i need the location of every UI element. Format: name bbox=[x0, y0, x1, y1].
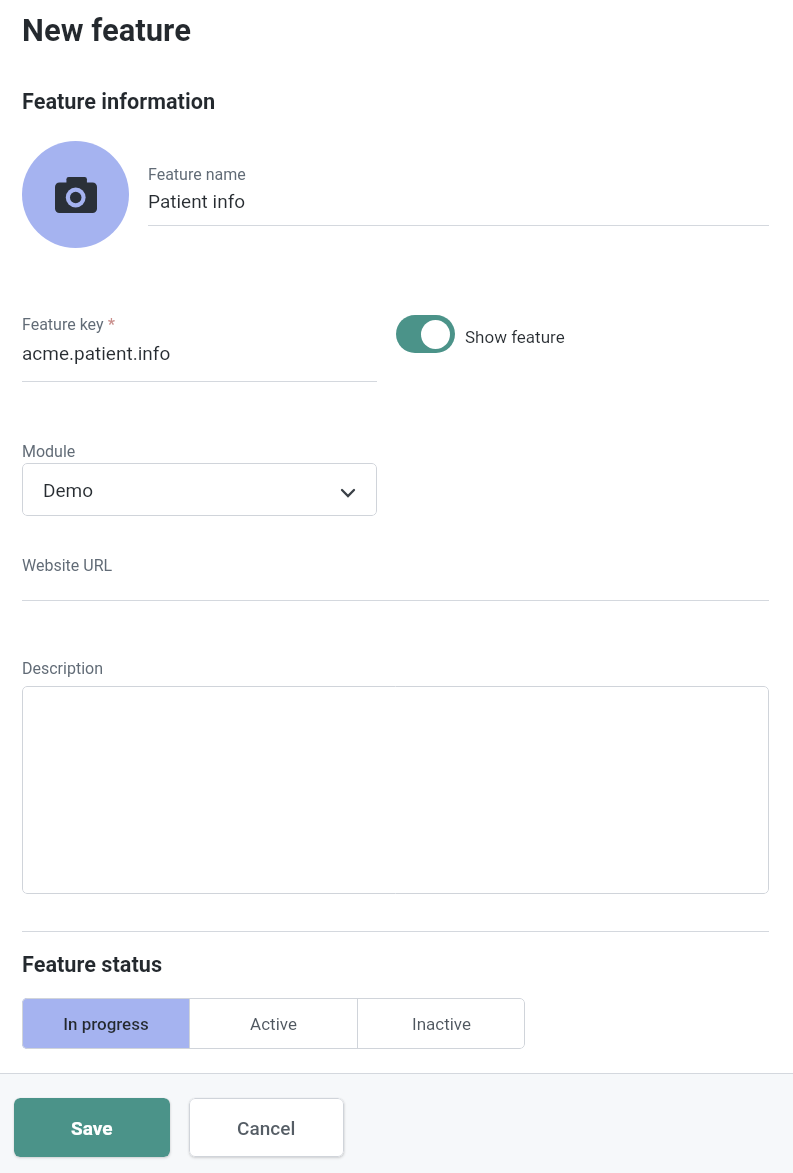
button[interactable]: Description input bbox=[22, 686, 769, 894]
staticText: Feature status bbox=[22, 952, 163, 977]
staticText: Demo bbox=[43, 479, 94, 501]
button[interactable]: Save bbox=[14, 1098, 170, 1157]
button[interactable]: Show feature bbox=[396, 315, 565, 353]
staticText: Patient info bbox=[148, 190, 246, 212]
other: Open module list bbox=[342, 490, 354, 496]
staticText: Feature information bbox=[22, 89, 216, 114]
staticText: Inactive bbox=[412, 1014, 471, 1034]
staticText: Website URL bbox=[22, 556, 113, 575]
staticText: Cancel bbox=[237, 1117, 296, 1139]
button[interactable]: Active bbox=[190, 998, 357, 1049]
staticText: * bbox=[104, 315, 115, 334]
staticText: Feature key bbox=[22, 315, 104, 334]
staticText: Feature name bbox=[148, 165, 246, 184]
staticText: Save bbox=[71, 1117, 113, 1139]
staticText: In progress bbox=[63, 1014, 149, 1034]
button[interactable]: Cancel bbox=[189, 1098, 344, 1157]
staticText: acme.patient.info bbox=[22, 342, 171, 364]
staticText: Show feature bbox=[465, 327, 565, 347]
staticText: New feature bbox=[22, 12, 191, 48]
button[interactable]: Inactive bbox=[358, 998, 525, 1049]
staticText: Description bbox=[22, 659, 103, 678]
button[interactable]: Demo bbox=[22, 463, 377, 516]
staticText: Module bbox=[22, 442, 76, 461]
staticText: Active bbox=[250, 1014, 297, 1034]
button[interactable]: Upload feature image bbox=[22, 141, 129, 248]
button[interactable]: In progress bbox=[22, 998, 189, 1049]
